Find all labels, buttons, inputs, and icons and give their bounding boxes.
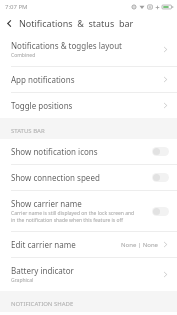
button[interactable]: App notifications	[0, 67, 177, 92]
button[interactable]: Show connection speed	[0, 165, 177, 190]
button[interactable]: Toggle off	[152, 207, 169, 216]
staticText: App notifications	[11, 74, 75, 85]
button[interactable]: Edit carrier name	[0, 232, 177, 257]
button[interactable]: Show notification icons	[0, 139, 177, 164]
button[interactable]: Battery indicator	[0, 258, 177, 291]
button[interactable]: Toggle off	[152, 173, 169, 182]
staticText: Show notification icons	[11, 146, 98, 157]
staticText: 7:07 PM	[5, 3, 28, 11]
button[interactable]: Back	[0, 14, 18, 32]
button[interactable]: Toggle positions	[0, 93, 177, 118]
staticText: Combined	[11, 52, 36, 59]
staticText: Edit carrier name	[11, 239, 76, 250]
staticText: Show connection speed	[11, 172, 100, 183]
staticText: Carrier name is still displayed on the l…	[11, 210, 135, 224]
button[interactable]: Notifications & toggles layout	[0, 33, 177, 66]
staticText: Graphical	[11, 277, 34, 284]
staticText: Show carrier name	[11, 198, 82, 209]
staticText: Notifications & status bar	[19, 17, 134, 29]
button[interactable]: Toggle off	[152, 147, 169, 156]
staticText: STATUS BAR	[11, 127, 45, 135]
staticText: Toggle positions	[11, 100, 73, 111]
button[interactable]: Show carrier name	[0, 191, 177, 231]
staticText: Battery indicator	[11, 265, 74, 276]
staticText: Notifications & toggles layout	[11, 40, 122, 51]
staticText: NOTIFICATION SHADE	[11, 300, 74, 308]
staticText: None | None	[121, 241, 158, 249]
